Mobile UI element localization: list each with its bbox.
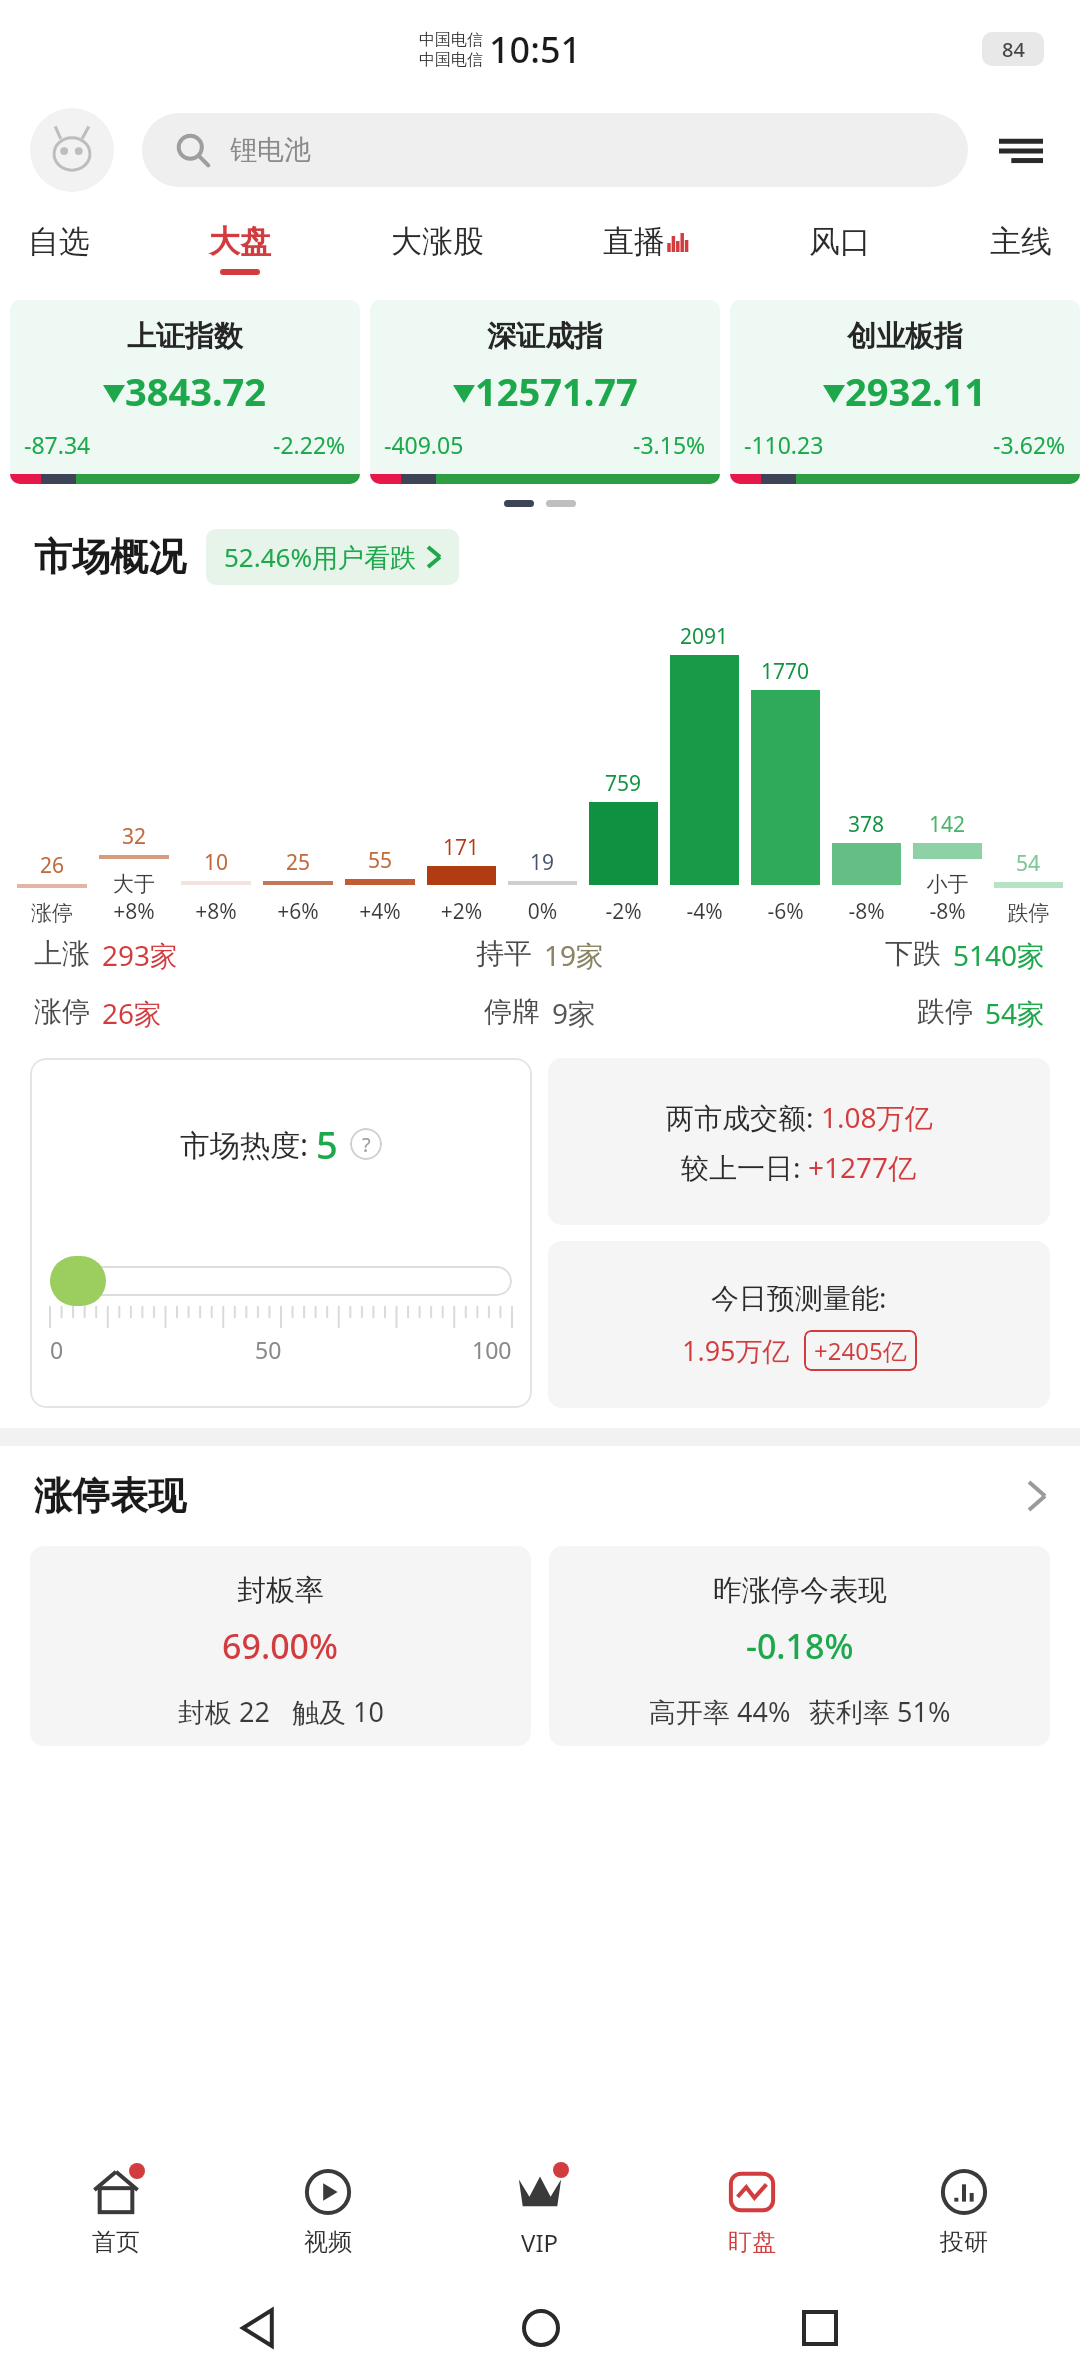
staticText: 1770 — [761, 657, 810, 686]
staticText: 涨停表现 — [34, 1472, 186, 1520]
staticText: 跌停 — [917, 994, 973, 1029]
staticText: 19家 — [544, 936, 605, 974]
staticText: 触及 10 — [292, 1693, 384, 1730]
staticText: 52.46%用户看跌 — [224, 539, 417, 575]
other: Recents — [803, 2311, 837, 2345]
staticText: 759 — [605, 769, 642, 798]
staticText: 10:51 — [489, 25, 582, 74]
staticText: -87.34 — [24, 429, 91, 460]
button[interactable]: 首页 — [10, 2163, 222, 2257]
staticText: 市场概况 — [34, 533, 186, 581]
staticText: -110.23 — [744, 429, 824, 460]
staticText: +8% — [96, 897, 172, 926]
staticText: 142 — [929, 810, 966, 839]
staticText: 293家 — [102, 936, 179, 974]
staticText: 69.00% — [222, 1623, 339, 1669]
staticText: 大盘 — [209, 222, 271, 261]
staticText: 直播 — [603, 222, 665, 261]
button[interactable]: 深证成指 — [370, 300, 720, 484]
button[interactable]: 锂电池 — [142, 113, 968, 187]
staticText: 1.08万亿 — [821, 1098, 933, 1136]
button[interactable]: 直播 — [597, 222, 695, 275]
staticText: 32 — [122, 822, 147, 851]
staticText: +8% — [178, 897, 254, 926]
staticText: -2.22% — [273, 429, 346, 460]
staticText: 上证指数 — [10, 318, 360, 355]
staticText: 上涨 — [34, 936, 90, 971]
staticText: -8% — [829, 897, 904, 926]
staticText: 0 — [50, 1334, 64, 1365]
staticText: 盯盘 — [728, 2227, 776, 2257]
staticText: 跌停 — [991, 900, 1066, 926]
staticText: 两市成交额: — [666, 1098, 821, 1136]
staticText: 9家 — [552, 994, 597, 1032]
staticText: 25 — [286, 848, 311, 877]
staticText: 高开率 44% — [649, 1693, 791, 1730]
button[interactable]: Menu — [992, 121, 1050, 179]
button[interactable]: 上证指数 — [10, 300, 360, 484]
staticText: ? — [362, 1131, 371, 1158]
staticText: 5 — [316, 1118, 338, 1170]
other: Back — [243, 2310, 279, 2346]
button[interactable]: 封板率 — [30, 1546, 531, 1746]
staticText: -3.62% — [993, 429, 1066, 460]
staticText: 84 — [1002, 36, 1025, 63]
button[interactable]: 自选 — [22, 222, 96, 275]
button[interactable]: Profile — [30, 108, 114, 192]
staticText: VIP — [521, 2226, 559, 2259]
button[interactable]: 盯盘 — [646, 2163, 858, 2257]
button[interactable]: 创业板指 — [730, 300, 1080, 484]
button[interactable]: 投研 — [858, 2163, 1070, 2257]
staticText: +2405亿 — [814, 1334, 907, 1367]
button[interactable]: VIP — [434, 2162, 646, 2259]
staticText: 3843.72 — [125, 365, 267, 417]
staticText: 中国电信 — [419, 30, 483, 50]
staticText: 下跌 — [885, 936, 941, 971]
other: Home — [522, 2309, 560, 2347]
staticText: 停牌 — [484, 994, 540, 1029]
staticText: 中国电信 — [419, 50, 483, 70]
button[interactable]: 两市成交额: — [548, 1058, 1050, 1225]
staticText: 12571.77 — [475, 365, 638, 417]
button[interactable]: 今日预测量能: — [548, 1241, 1050, 1408]
staticText: 54 — [1016, 849, 1041, 878]
staticText: 视频 — [304, 2227, 352, 2257]
staticText: 171 — [443, 833, 480, 862]
staticText: -8% — [910, 897, 985, 926]
button[interactable]: 主线 — [984, 222, 1058, 275]
staticText: 自选 — [28, 222, 90, 261]
staticText: +6% — [260, 897, 336, 926]
staticText: 54家 — [985, 994, 1046, 1032]
staticText: 涨停 — [34, 994, 90, 1029]
button[interactable]: 大涨股 — [385, 222, 490, 275]
staticText: -409.05 — [384, 429, 464, 460]
other: More — [1028, 1481, 1046, 1511]
staticText: 19 — [530, 848, 555, 877]
staticText: 昨涨停今表现 — [713, 1572, 887, 1609]
staticText: 风口 — [809, 222, 871, 261]
staticText: +1277亿 — [808, 1148, 917, 1186]
staticText: 深证成指 — [370, 318, 720, 355]
button[interactable]: 昨涨停今表现 — [549, 1546, 1050, 1746]
button[interactable]: 涨停表现 — [34, 1472, 1046, 1520]
staticText: -3.15% — [633, 429, 706, 460]
staticText: 0% — [505, 897, 580, 926]
staticText: 主线 — [990, 222, 1052, 261]
button[interactable]: 风口 — [803, 222, 877, 275]
staticText: 市场热度: — [180, 1124, 316, 1165]
staticText: 锂电池 — [230, 133, 311, 167]
staticText: 获利率 51% — [809, 1693, 951, 1730]
staticText: 今日预测量能: — [711, 1278, 887, 1316]
staticText: -2% — [586, 897, 661, 926]
button[interactable]: 大盘 — [203, 222, 277, 275]
staticText: 小于 — [910, 871, 985, 897]
staticText: 大于 — [96, 871, 172, 897]
staticText: 5140家 — [953, 936, 1046, 974]
button[interactable]: 视频 — [222, 2163, 434, 2257]
staticText: 2932.11 — [845, 365, 987, 417]
staticText: 创业板指 — [730, 318, 1080, 355]
staticText: 378 — [848, 810, 885, 839]
button[interactable]: 市场热度: — [30, 1058, 532, 1408]
button[interactable]: 52.46%用户看跌 — [206, 529, 459, 585]
staticText: 55 — [368, 846, 393, 875]
